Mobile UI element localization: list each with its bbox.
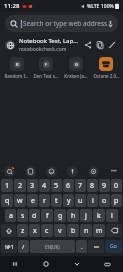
staticText: F — [45, 62, 48, 67]
button[interactable]: n — [80, 224, 92, 237]
button[interactable]: 5 — [51, 179, 62, 192]
staticText: Octane 2.0… — [93, 73, 120, 79]
button[interactable]: 4 — [39, 179, 50, 192]
button[interactable]: Stickers — [46, 166, 57, 177]
staticText: a — [9, 211, 13, 221]
staticText: 6 — [66, 181, 71, 191]
staticText: %LTE — [87, 3, 100, 10]
button[interactable]: Hide keyboard — [61, 256, 92, 272]
button[interactable]: 2 — [14, 179, 26, 192]
staticText: t — [55, 196, 58, 206]
staticText: 4 — [42, 181, 47, 191]
button[interactable]: Shift — [1, 224, 16, 237]
staticText: 2 — [18, 181, 23, 191]
staticText: Go — [110, 243, 117, 250]
button[interactable]: Share — [82, 39, 94, 51]
button[interactable]: Home — [30, 256, 61, 272]
staticText: o — [102, 196, 107, 206]
button[interactable]: z — [17, 224, 28, 237]
button[interactable]: Go — [105, 240, 122, 253]
button[interactable]: 8 — [87, 179, 98, 192]
button[interactable]: Recent apps — [0, 256, 30, 272]
button[interactable]: G — [61, 57, 91, 79]
staticText: b — [71, 226, 76, 236]
staticText: Notebook Test, Lapt… — [19, 37, 80, 45]
button[interactable]: Switch keyboard — [92, 256, 123, 272]
staticText: i — [92, 196, 94, 206]
button[interactable]: 6 — [63, 179, 74, 192]
staticText: e — [31, 196, 35, 206]
button[interactable]: Voice search — [108, 19, 113, 29]
button[interactable]: h — [67, 209, 79, 222]
staticText: / — [22, 243, 25, 251]
button[interactable]: F — [31, 57, 61, 79]
staticText: v — [58, 226, 62, 236]
button[interactable]: Octane 2.0… — [91, 57, 121, 79]
staticText: G — [75, 62, 78, 67]
button[interactable]: Notebook Test, Lapt… — [0, 35, 123, 54]
button[interactable]: Search keyboard — [4, 166, 15, 177]
staticText: ••• — [111, 168, 117, 175]
button[interactable]: Keyboard settings — [88, 166, 99, 177]
button[interactable]: i — [87, 194, 98, 207]
button[interactable]: f — [41, 209, 53, 222]
staticText: j — [85, 211, 87, 221]
button[interactable]: k — [93, 209, 105, 222]
staticText: s — [21, 211, 25, 221]
button[interactable]: 7 — [75, 179, 86, 192]
staticText: y — [67, 196, 71, 206]
button[interactable]: Copy link — [94, 39, 106, 51]
button[interactable]: c — [41, 224, 53, 237]
staticText: u — [78, 196, 83, 206]
button[interactable]: x — [29, 224, 40, 237]
staticText: f — [46, 211, 49, 221]
button[interactable]: q — [1, 194, 13, 207]
staticText: 100% — [101, 3, 114, 10]
staticText: k — [97, 211, 101, 221]
button[interactable]: Voice input — [67, 166, 78, 177]
button[interactable]: 3 — [27, 179, 38, 192]
button[interactable]: R — [2, 57, 31, 79]
button[interactable]: . — [76, 240, 87, 253]
button[interactable]: d — [29, 209, 40, 222]
button[interactable]: Clipboard — [25, 166, 36, 177]
button[interactable]: !#1 — [1, 240, 17, 253]
staticText: Search or type web address — [23, 19, 108, 28]
button[interactable]: a — [5, 209, 16, 222]
button[interactable]: v — [54, 224, 66, 237]
button[interactable]: t — [51, 194, 62, 207]
button[interactable]: g — [54, 209, 66, 222]
button[interactable]: u — [75, 194, 86, 207]
button[interactable]: s — [17, 209, 28, 222]
staticText: 7 — [78, 181, 83, 191]
button[interactable]: Emoji — [88, 240, 104, 253]
button[interactable]: e — [27, 194, 38, 207]
button[interactable]: 1 — [1, 179, 13, 192]
button[interactable]: Edit query — [106, 39, 118, 51]
staticText: 1 — [5, 181, 10, 191]
button[interactable]: y — [63, 194, 74, 207]
button[interactable]: p — [111, 194, 122, 207]
button[interactable]: b — [67, 224, 79, 237]
staticText: notebookcheck.com — [19, 46, 67, 53]
button[interactable]: o — [99, 194, 110, 207]
button[interactable]: j — [80, 209, 92, 222]
staticText: l — [111, 211, 113, 221]
staticText: z — [21, 226, 25, 236]
button[interactable]: Search or type web address — [5, 15, 118, 32]
staticText: Kraken Ja… — [64, 73, 88, 79]
staticText: Random I… — [4, 73, 29, 79]
button[interactable]: Space — [30, 240, 75, 253]
button[interactable]: More options — [109, 166, 119, 176]
button[interactable]: m — [93, 224, 105, 237]
button[interactable]: / — [18, 240, 29, 253]
button[interactable]: l — [106, 209, 118, 222]
button[interactable]: r — [39, 194, 50, 207]
button[interactable]: w — [14, 194, 26, 207]
staticText: 3 — [30, 181, 35, 191]
staticText: g — [58, 211, 63, 221]
button[interactable]: 0 — [111, 179, 122, 192]
button[interactable]: 9 — [99, 179, 110, 192]
staticText: . — [81, 243, 83, 251]
button[interactable]: Backspace — [106, 224, 122, 237]
